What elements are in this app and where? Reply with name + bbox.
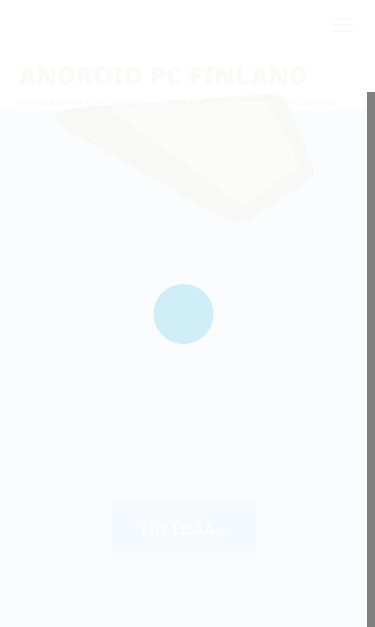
staticText: WWW.ANDROID-PC.FI | ANDROID ASENNUKSET |… bbox=[18, 98, 336, 108]
staticText: Android asennukset bbox=[53, 288, 314, 325]
staticText: LUE LISÄÄ... bbox=[141, 519, 226, 539]
